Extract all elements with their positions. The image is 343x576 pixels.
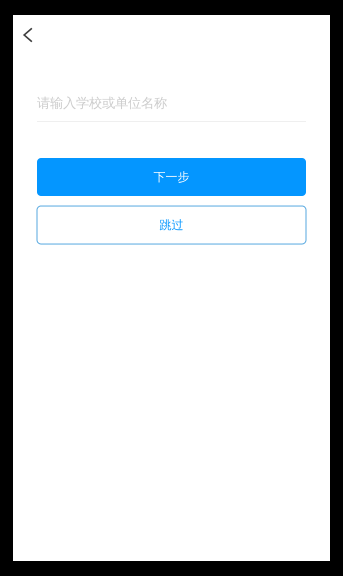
button[interactable]: 下一步 bbox=[37, 158, 306, 196]
staticText: 请输入学校或单位名称 bbox=[37, 95, 167, 111]
button[interactable]: Back bbox=[13, 20, 43, 50]
staticText: 跳过 bbox=[159, 218, 183, 232]
button[interactable]: 跳过 bbox=[37, 206, 306, 244]
staticText: 下一步 bbox=[153, 170, 189, 184]
